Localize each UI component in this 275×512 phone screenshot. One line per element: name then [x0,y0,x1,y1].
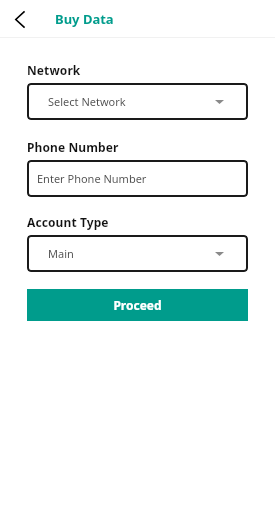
staticText: Account Type [27,214,109,230]
button[interactable]: Main [27,235,248,272]
staticText: Enter Phone Number [37,171,147,186]
staticText: Proceed [113,297,162,313]
staticText: Buy Data [55,10,114,28]
staticText: Phone Number [27,139,119,155]
button[interactable]: Back [7,7,31,31]
staticText: Main [48,246,215,261]
button[interactable]: Proceed [27,289,248,321]
staticText: Select Network [48,94,215,109]
button[interactable]: Enter Phone Number [27,160,248,197]
staticText: Network [27,62,81,78]
button[interactable]: Select Network [27,83,248,120]
